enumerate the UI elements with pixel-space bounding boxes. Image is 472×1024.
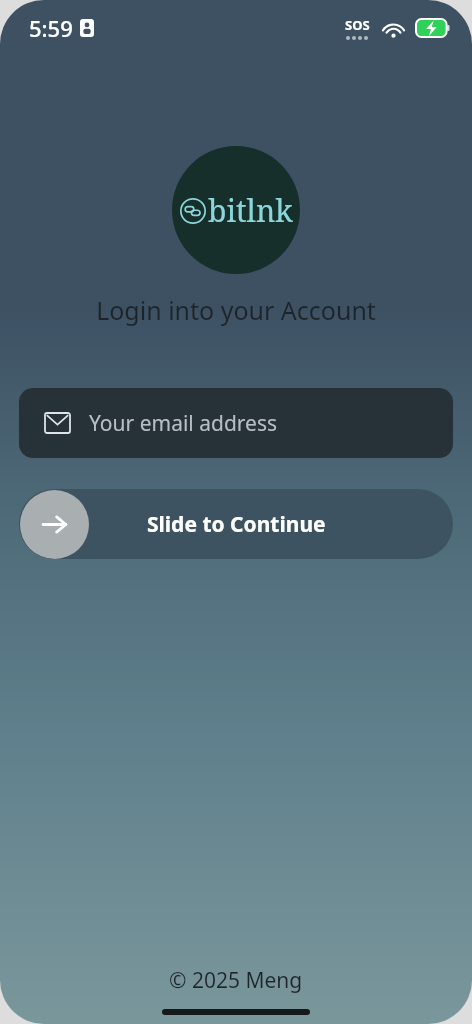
staticText: 5:59 — [29, 13, 73, 43]
staticText: Your email address — [89, 409, 278, 438]
button[interactable]: Slide to continue — [20, 490, 89, 559]
button[interactable]: Your email address — [19, 388, 453, 458]
staticText: bitlnk — [208, 190, 293, 231]
staticText: SOS — [345, 16, 370, 34]
button[interactable]: Slide to Continue — [19, 489, 453, 559]
staticText: Login into your Account — [96, 293, 376, 327]
staticText: © 2025 Meng — [169, 966, 303, 995]
staticText: Slide to Continue — [147, 510, 326, 539]
